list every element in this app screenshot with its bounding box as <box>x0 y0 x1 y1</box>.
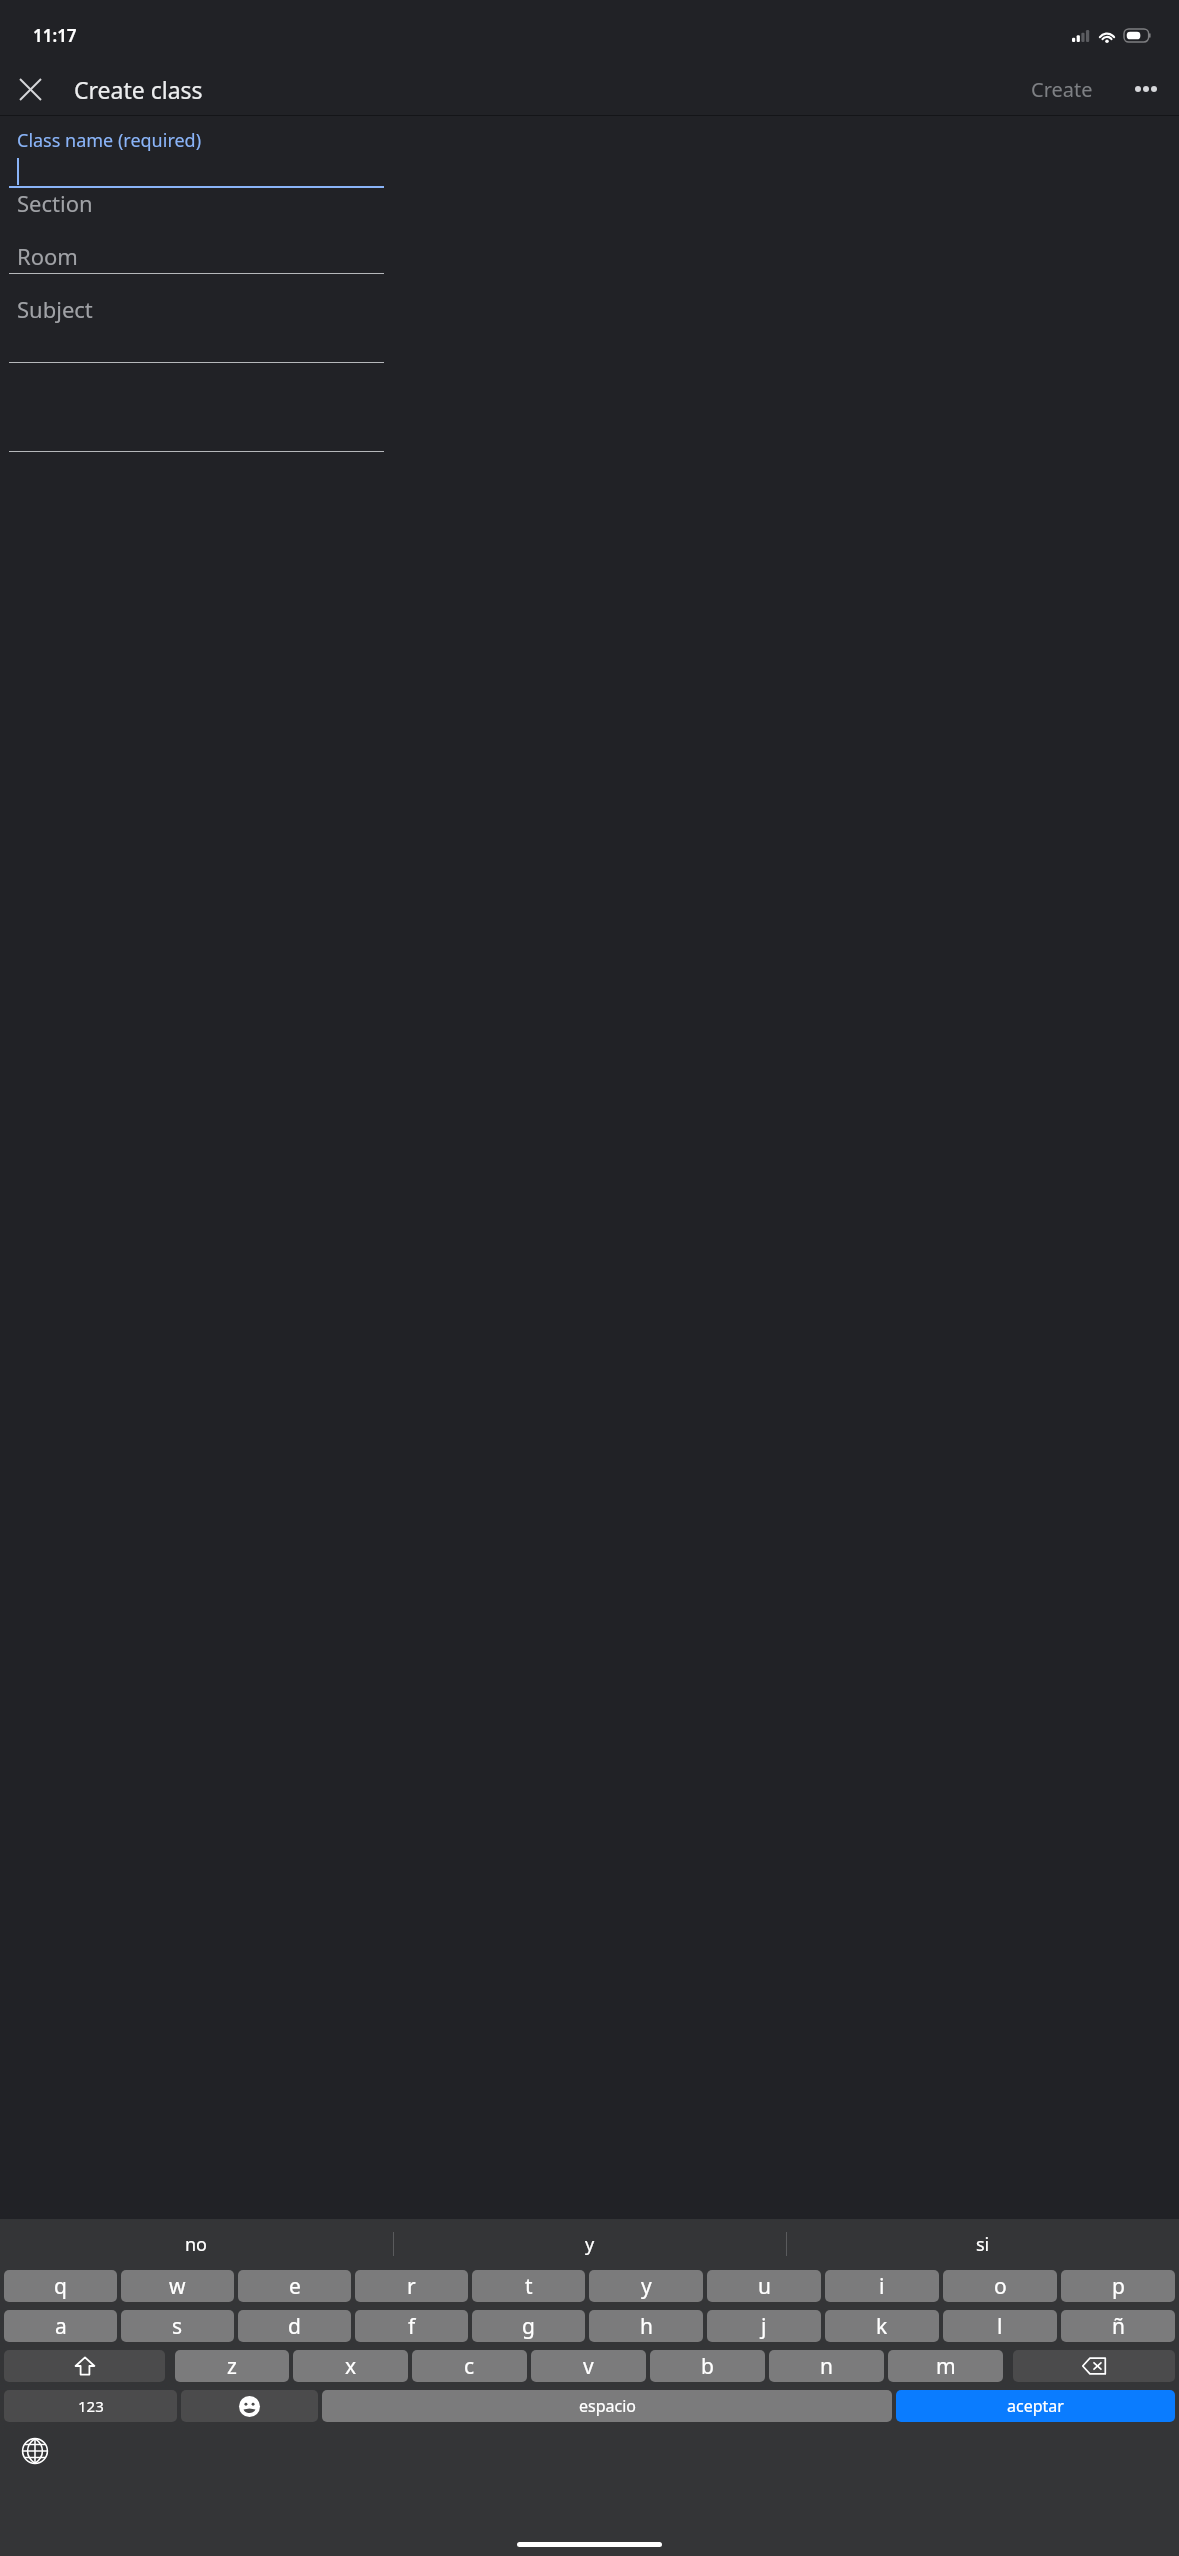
button[interactable]: j <box>707 2310 821 2342</box>
button[interactable]: z <box>175 2350 289 2382</box>
button[interactable]: espacio <box>322 2390 892 2422</box>
button[interactable]: s <box>121 2310 234 2342</box>
button[interactable]: Backspace <box>1013 2350 1175 2382</box>
staticText: y <box>585 2232 595 2257</box>
staticText: Subject <box>17 294 93 324</box>
staticText: h <box>640 2312 653 2341</box>
staticText: c <box>464 2352 475 2381</box>
button[interactable]: t <box>472 2270 585 2302</box>
button[interactable]: m <box>888 2350 1003 2382</box>
staticText: d <box>288 2312 301 2341</box>
staticText: r <box>407 2272 416 2301</box>
staticText: k <box>876 2312 888 2341</box>
button[interactable]: x <box>293 2350 408 2382</box>
button[interactable]: o <box>943 2270 1057 2302</box>
button[interactable]: h <box>589 2310 703 2342</box>
button[interactable]: Close <box>6 65 54 113</box>
staticText: i <box>879 2272 885 2301</box>
button[interactable]: u <box>707 2270 821 2302</box>
button[interactable]: d <box>238 2310 351 2342</box>
staticText: q <box>54 2272 67 2301</box>
button[interactable]: Subject <box>0 288 1179 346</box>
staticText: si <box>976 2232 990 2257</box>
staticText: o <box>994 2272 1007 2301</box>
button[interactable]: Change keyboard language <box>12 2428 58 2474</box>
button[interactable]: e <box>238 2270 351 2302</box>
button[interactable]: Section <box>0 182 1179 240</box>
staticText: s <box>172 2312 183 2341</box>
button[interactable]: q <box>4 2270 117 2302</box>
staticText: Section <box>17 188 93 218</box>
staticText: a <box>55 2312 67 2341</box>
staticText: t <box>525 2272 533 2301</box>
button[interactable]: w <box>121 2270 234 2302</box>
staticText: l <box>997 2312 1003 2341</box>
button[interactable]: v <box>531 2350 646 2382</box>
button[interactable]: n <box>769 2350 884 2382</box>
button[interactable]: a <box>4 2310 117 2342</box>
button[interactable]: Room <box>0 235 1179 293</box>
button[interactable]: b <box>650 2350 765 2382</box>
staticText: v <box>583 2352 594 2381</box>
staticText: 11:17 <box>33 24 77 47</box>
staticText: p <box>1112 2272 1125 2301</box>
button[interactable]: k <box>825 2310 939 2342</box>
staticText: Create class <box>74 74 203 105</box>
button[interactable]: p <box>1061 2270 1175 2302</box>
button[interactable]: f <box>355 2310 468 2342</box>
staticText: b <box>701 2352 714 2381</box>
button[interactable]: 123 <box>4 2390 177 2422</box>
button[interactable]: i <box>825 2270 939 2302</box>
staticText: g <box>522 2312 535 2341</box>
staticText: espacio <box>579 2395 636 2417</box>
button[interactable]: Shift <box>4 2350 165 2382</box>
button[interactable]: g <box>472 2310 585 2342</box>
button[interactable]: y <box>394 2219 786 2269</box>
staticText: z <box>227 2352 237 2381</box>
button[interactable]: si <box>787 2219 1179 2269</box>
button[interactable]: Create <box>1031 76 1093 103</box>
staticText: m <box>936 2352 956 2381</box>
staticText: Room <box>17 241 78 271</box>
button[interactable]: r <box>355 2270 468 2302</box>
staticText: aceptar <box>1007 2395 1064 2417</box>
staticText: Create <box>1031 76 1093 103</box>
staticText: no <box>185 2232 208 2257</box>
staticText: j <box>761 2312 767 2341</box>
staticText: 123 <box>78 2396 104 2416</box>
staticText: y <box>641 2272 652 2301</box>
button[interactable]: aceptar <box>896 2390 1175 2422</box>
staticText: n <box>820 2352 833 2381</box>
button[interactable]: More options <box>1122 65 1170 113</box>
staticText: Class name (required) <box>17 128 202 153</box>
button[interactable]: ñ <box>1061 2310 1175 2342</box>
staticText: x <box>345 2352 357 2381</box>
button[interactable]: y <box>589 2270 703 2302</box>
staticText: w <box>169 2272 186 2301</box>
staticText: f <box>408 2312 416 2341</box>
button[interactable]: Class name (required) <box>0 118 1179 188</box>
button[interactable]: l <box>943 2310 1057 2342</box>
button[interactable]: c <box>412 2350 527 2382</box>
staticText: e <box>289 2272 301 2301</box>
staticText: ñ <box>1112 2312 1125 2341</box>
staticText: u <box>758 2272 771 2301</box>
button[interactable]: Emoji <box>181 2390 318 2422</box>
button[interactable]: no <box>0 2219 393 2269</box>
